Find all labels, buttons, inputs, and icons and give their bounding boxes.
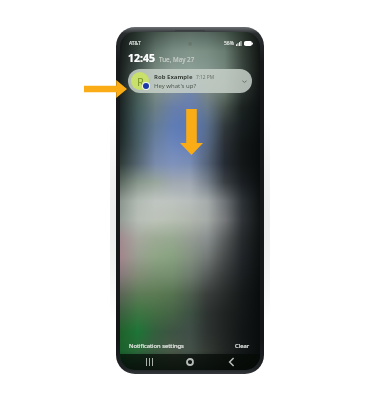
button[interactable]: Recents — [137, 354, 161, 370]
other: Swipe down — [180, 109, 203, 155]
button[interactable]: Back — [219, 354, 243, 370]
other: Pointer to notification — [84, 80, 127, 98]
staticText: R — [137, 74, 144, 89]
staticText: Hey what's up? — [154, 82, 197, 90]
staticText: 7:12 PM — [196, 74, 215, 81]
button[interactable]: Notification settings — [129, 342, 184, 350]
button[interactable]: Clear — [235, 342, 250, 350]
staticText: 56% — [224, 40, 234, 47]
staticText: AT&T — [129, 40, 141, 47]
staticText: Tue, May 27 — [159, 55, 195, 64]
button[interactable]: R — [128, 69, 252, 93]
staticText: Rob Example — [154, 73, 193, 81]
staticText: 12:45 — [128, 51, 155, 65]
button[interactable]: Home — [178, 354, 202, 370]
